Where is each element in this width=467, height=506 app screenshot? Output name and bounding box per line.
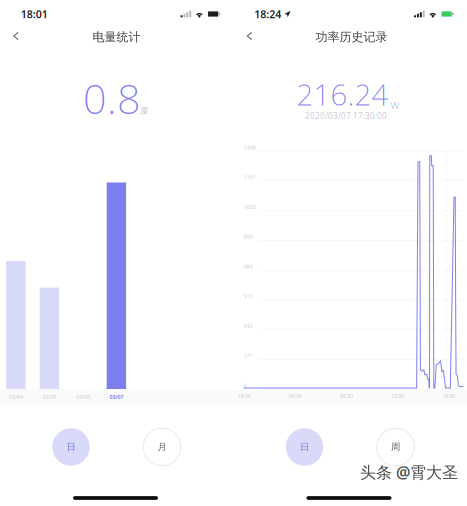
staticText: 03/05	[42, 393, 56, 401]
staticText: 12:30	[391, 392, 404, 400]
staticText: 月	[157, 441, 166, 453]
staticText: 342	[243, 322, 252, 330]
staticText: 00:30	[289, 392, 302, 400]
staticText: 日	[66, 441, 75, 453]
staticText: 2020/03/07 17:30:00	[305, 111, 387, 121]
staticText: 855	[243, 233, 252, 240]
staticText: 18:30	[237, 392, 250, 400]
staticText: 0.8	[83, 71, 141, 125]
staticText: 度	[141, 106, 149, 115]
staticText: 03/04	[9, 393, 23, 401]
staticText: 513	[243, 293, 252, 300]
staticText: 周	[391, 441, 400, 453]
staticText: W	[390, 99, 399, 111]
button[interactable]: 日	[285, 427, 324, 466]
staticText: 18:24	[254, 7, 281, 21]
button[interactable]: 周	[376, 427, 415, 466]
staticText: 18:30	[442, 392, 455, 400]
button[interactable]: 日	[51, 427, 90, 466]
staticText: 06:30	[340, 392, 353, 400]
staticText: 1368	[243, 144, 255, 151]
staticText: 18:01	[21, 7, 48, 21]
staticText: 1197	[243, 174, 255, 181]
staticText: 03/06	[76, 393, 90, 401]
button[interactable]: Back	[2, 23, 30, 49]
button[interactable]: 月	[142, 427, 181, 466]
staticText: 1026	[243, 203, 255, 211]
staticText: 684	[243, 263, 252, 270]
staticText: 功率历史记录	[315, 30, 387, 44]
staticText: 电量统计	[92, 30, 140, 44]
staticText: 216.24	[296, 74, 388, 113]
staticText: 171	[243, 352, 252, 359]
staticText: 0	[243, 382, 246, 389]
staticText: 头条 @霄大圣	[360, 461, 458, 483]
staticText: 日	[300, 441, 309, 453]
button[interactable]: Back	[235, 23, 263, 49]
staticText: 03/07	[109, 393, 123, 401]
